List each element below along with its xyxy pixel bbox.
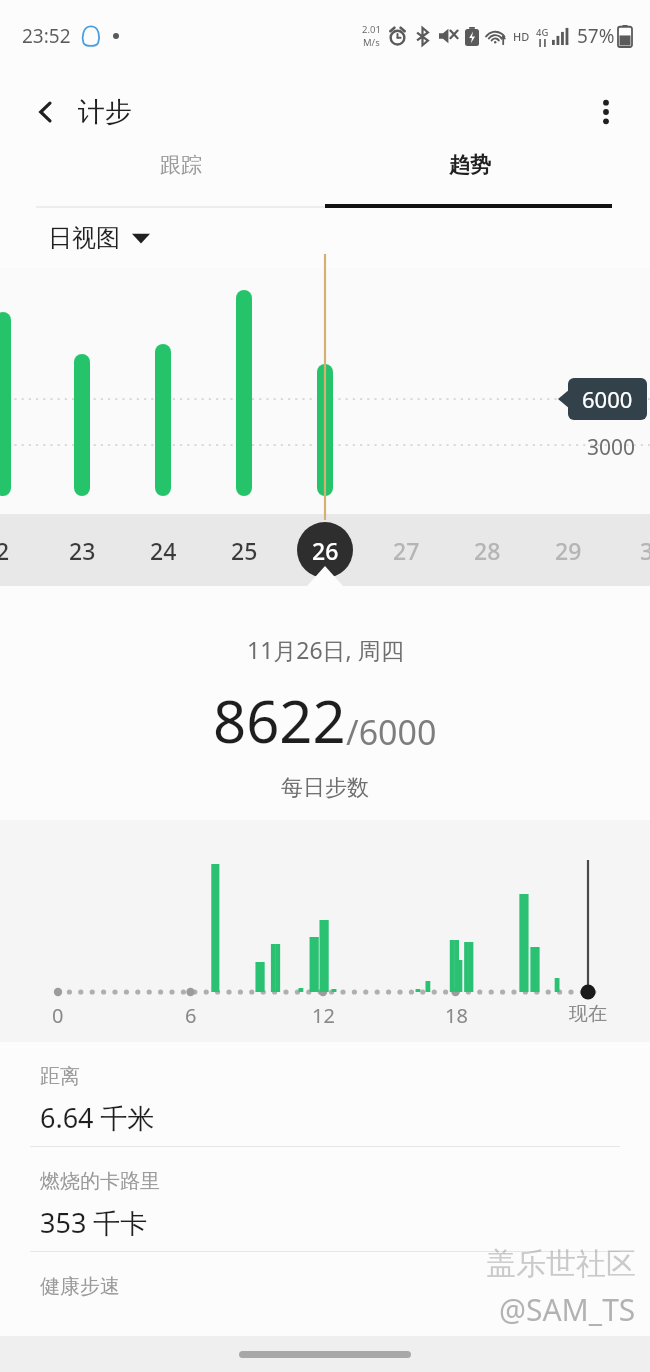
staticText: 26 — [312, 535, 339, 566]
staticText: 3 — [640, 535, 650, 566]
staticText: 2.01 — [362, 23, 381, 36]
staticText: 日视图 — [48, 223, 120, 253]
staticText: M/s — [363, 36, 380, 49]
button[interactable]: 27 — [376, 514, 436, 586]
button[interactable]: 23 — [52, 514, 112, 586]
button[interactable]: 25 — [214, 514, 274, 586]
staticText: 3000 — [587, 433, 636, 462]
staticText: 燃烧的卡路里 — [40, 1169, 160, 1194]
button[interactable]: More options — [582, 88, 630, 136]
staticText: 0 — [52, 1002, 64, 1029]
staticText: 跟踪 — [160, 152, 202, 178]
button[interactable]: 日视图 — [48, 223, 150, 253]
staticText: 27 — [393, 535, 420, 566]
staticText: 12 — [312, 1002, 335, 1029]
staticText: /6000 — [346, 709, 437, 755]
staticText: 353 千卡 — [40, 1204, 148, 1241]
staticText: 24 — [150, 535, 177, 566]
button[interactable]: 距离 — [0, 1042, 650, 1146]
button[interactable]: 3 — [617, 514, 650, 586]
button[interactable]: Back — [22, 88, 70, 136]
staticText: 6.64 千米 — [40, 1099, 155, 1136]
staticText: 每日步数 — [281, 774, 369, 802]
button[interactable]: 趋势 — [325, 152, 614, 208]
staticText: 29 — [555, 535, 582, 566]
button[interactable]: 26 — [295, 514, 355, 586]
button[interactable]: 24 — [133, 514, 193, 586]
staticText: 现在 — [569, 1002, 607, 1026]
button[interactable]: 29 — [538, 514, 598, 586]
staticText: 6000 — [582, 384, 633, 414]
button[interactable]: 2 — [0, 514, 33, 586]
button[interactable]: 28 — [457, 514, 517, 586]
staticText: HD — [513, 29, 530, 44]
staticText: 11月26日, 周四 — [247, 634, 404, 665]
staticText: 盖乐世社区 — [486, 1245, 636, 1283]
staticText: 23:52 — [22, 23, 71, 49]
staticText: 8622 — [213, 681, 346, 760]
button[interactable]: 跟踪 — [36, 152, 325, 208]
staticText: 4G — [536, 26, 549, 39]
staticText: 趋势 — [449, 152, 491, 178]
button[interactable]: 燃烧的卡路里 — [0, 1147, 650, 1251]
staticText: 距离 — [40, 1064, 80, 1089]
staticText: 18 — [445, 1002, 468, 1029]
staticText: 57% — [577, 23, 615, 49]
staticText: 健康步速 — [40, 1274, 120, 1299]
staticText: 6 — [185, 1002, 197, 1029]
staticText: 2 — [0, 535, 10, 566]
staticText: 计步 — [78, 95, 132, 129]
staticText: 23 — [69, 535, 96, 566]
button[interactable]: 健康步速 — [0, 1252, 650, 1318]
staticText: 28 — [474, 535, 501, 566]
staticText: @SAM_TS — [499, 1289, 636, 1330]
staticText: 25 — [231, 535, 258, 566]
